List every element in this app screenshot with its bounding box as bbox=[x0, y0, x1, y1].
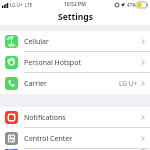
button[interactable]: Notifications bbox=[0, 107, 150, 128]
button[interactable]: Do Not Disturb bbox=[0, 149, 150, 150]
button[interactable]: Carrier bbox=[0, 73, 150, 94]
staticText: 10:52 PM bbox=[64, 1, 86, 8]
staticText: Notifications bbox=[24, 113, 66, 123]
staticText: Cellular bbox=[24, 37, 49, 47]
staticText: Carrier bbox=[24, 79, 47, 89]
staticText: LG U+ bbox=[10, 2, 23, 8]
staticText: LG U+ bbox=[119, 79, 138, 88]
button[interactable]: Personal Hotspot bbox=[0, 52, 150, 73]
button[interactable]: Cellular bbox=[0, 31, 150, 52]
button[interactable]: Control Center bbox=[0, 128, 150, 149]
staticText: 47% bbox=[127, 2, 136, 8]
staticText: Settings bbox=[58, 11, 93, 23]
staticText: LTE bbox=[25, 2, 33, 8]
staticText: Personal Hotspot bbox=[24, 58, 81, 68]
staticText: Control Center bbox=[24, 134, 73, 144]
